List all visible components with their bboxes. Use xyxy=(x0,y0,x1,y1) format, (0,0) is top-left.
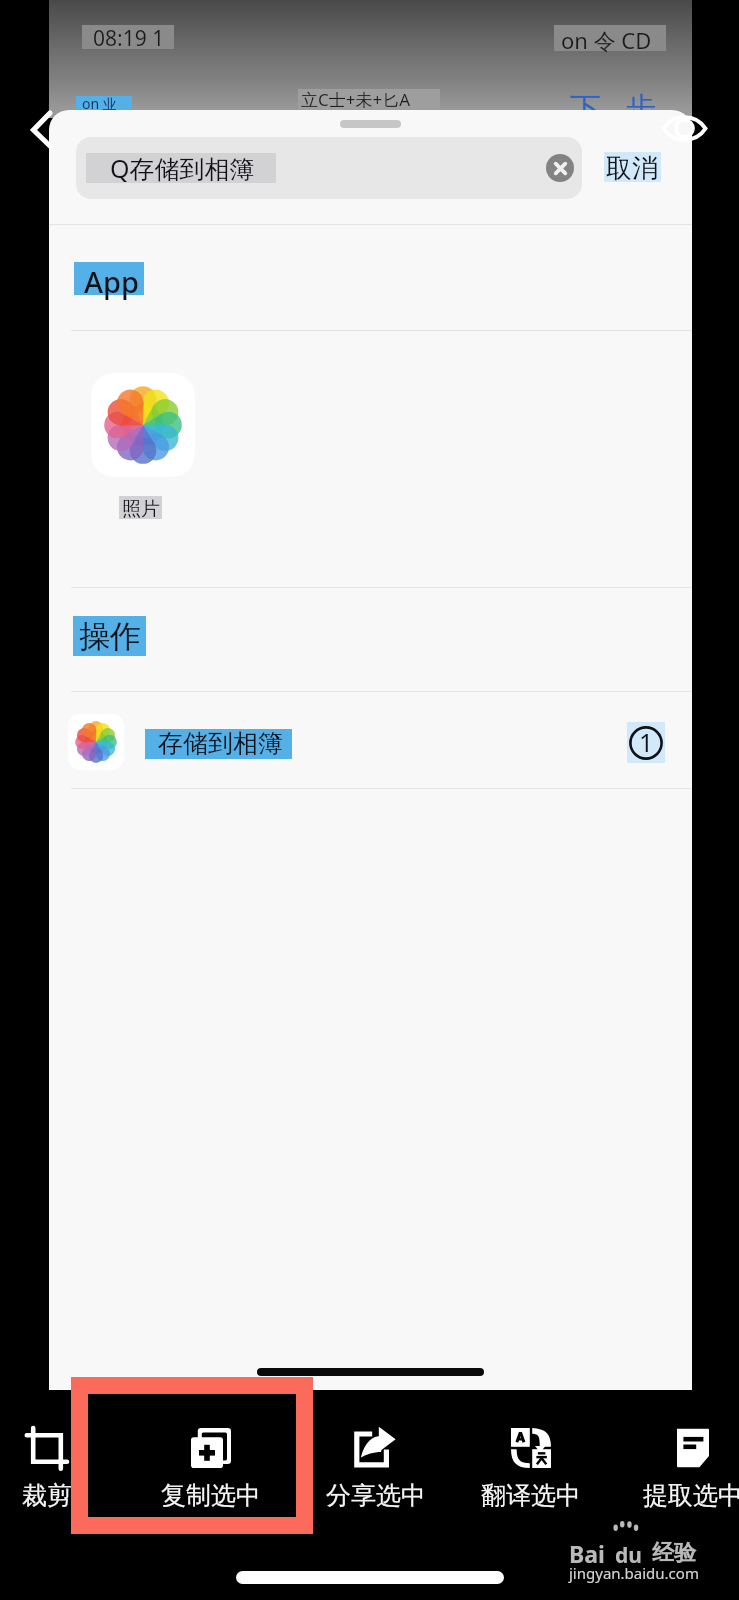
button[interactable]: Q存储到相簿 xyxy=(76,137,582,199)
staticText: 立C士+未+匕A xyxy=(301,88,411,111)
staticText: App xyxy=(84,262,139,301)
staticText: 08:19 1 xyxy=(93,24,165,53)
button[interactable] xyxy=(604,152,661,182)
button[interactable]: 分享选中 xyxy=(298,1406,454,1516)
staticText: 裁剪 xyxy=(22,1480,72,1511)
staticText: on 业 xyxy=(82,94,117,113)
staticText: 1 xyxy=(639,725,654,759)
staticText: 翻译选中 xyxy=(481,1480,581,1511)
staticText: 取消 xyxy=(606,152,658,185)
other: Preview xyxy=(661,112,708,145)
staticText: on 令 CD xyxy=(561,25,652,55)
staticText: Bai xyxy=(569,1538,605,1569)
button[interactable]: 存储到相簿 xyxy=(49,692,692,901)
staticText: 复制选中 xyxy=(161,1480,261,1511)
staticText: 照片 xyxy=(122,497,160,521)
button[interactable]: 翻译选中 xyxy=(453,1406,609,1516)
button[interactable]: 提取选中 xyxy=(615,1406,739,1516)
staticText: 提取选中 xyxy=(643,1480,739,1511)
staticText: 分享选中 xyxy=(326,1480,426,1511)
staticText: 操作 xyxy=(79,617,141,656)
staticText: Q存储到相簿 xyxy=(110,151,255,185)
staticText: 下 步 xyxy=(570,86,657,128)
button[interactable]: Clear search xyxy=(546,154,574,182)
staticText: jingyan.baidu.com xyxy=(569,1563,699,1583)
button[interactable]: 复制选中 xyxy=(133,1406,289,1516)
staticText: du xyxy=(615,1541,642,1570)
other: Back xyxy=(30,110,54,150)
staticText: 存储到相簿 xyxy=(158,728,283,759)
staticText: 经验 xyxy=(652,1539,696,1567)
button[interactable]: 裁剪 xyxy=(0,1406,125,1516)
